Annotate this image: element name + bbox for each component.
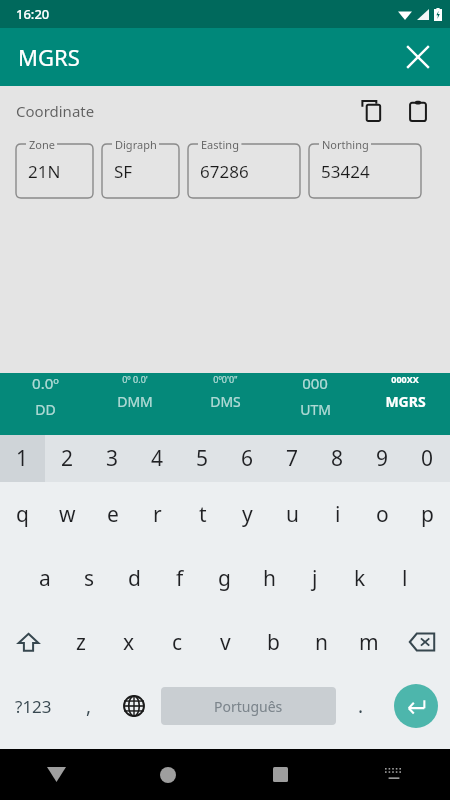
staticText: 0º 0.0' — [122, 373, 148, 385]
button[interactable]: Shift — [0, 610, 57, 674]
button[interactable]: 7 — [270, 435, 315, 482]
button[interactable]: 0.0º — [0, 373, 90, 419]
staticText: 1 — [16, 444, 29, 473]
staticText: l — [402, 564, 408, 593]
button[interactable]: b — [249, 610, 297, 674]
staticText: t — [199, 500, 207, 529]
staticText: f — [176, 564, 184, 593]
button[interactable]: 2 — [45, 435, 90, 482]
button[interactable]: Switch keyboard — [337, 749, 450, 800]
button[interactable]: q — [0, 482, 45, 546]
button[interactable]: k — [337, 546, 382, 610]
button[interactable]: f — [157, 546, 202, 610]
staticText: e — [107, 500, 119, 529]
staticText: 21N — [28, 160, 61, 183]
button[interactable]: j — [292, 546, 337, 610]
button[interactable]: Zone — [16, 136, 93, 198]
staticText: UTM — [300, 400, 331, 419]
button[interactable]: , — [67, 674, 110, 738]
button[interactable]: p — [405, 482, 450, 546]
staticText: n — [315, 628, 328, 657]
button[interactable]: 9 — [360, 435, 405, 482]
button[interactable]: Hide keyboard — [0, 749, 112, 800]
button[interactable]: 5 — [180, 435, 225, 482]
staticText: k — [354, 564, 366, 593]
staticText: i — [335, 500, 341, 529]
staticText: c — [172, 628, 183, 657]
button[interactable]: o — [360, 482, 405, 546]
button[interactable]: n — [297, 610, 345, 674]
staticText: v — [220, 628, 231, 657]
button[interactable]: w — [45, 482, 90, 546]
button[interactable]: v — [201, 610, 249, 674]
button[interactable]: a — [22, 546, 67, 610]
button[interactable]: y — [225, 482, 270, 546]
staticText: ?123 — [15, 695, 52, 718]
staticText: 0º0'0" — [213, 373, 238, 385]
staticText: y — [242, 500, 253, 529]
staticText: 5 — [196, 444, 209, 473]
staticText: 9 — [376, 444, 389, 473]
staticText: , — [86, 693, 92, 719]
button[interactable]: 8 — [315, 435, 360, 482]
staticText: Easting — [201, 137, 239, 152]
button[interactable]: m — [345, 610, 393, 674]
button[interactable]: g — [202, 546, 247, 610]
staticText: Northing — [322, 137, 369, 152]
button[interactable]: e — [90, 482, 135, 546]
staticText: 3 — [106, 444, 119, 473]
staticText: 4 — [151, 444, 164, 473]
button[interactable]: 4 — [135, 435, 180, 482]
button[interactable]: l — [382, 546, 427, 610]
staticText: 0.0º — [32, 373, 59, 393]
button[interactable]: u — [270, 482, 315, 546]
button[interactable]: 0º 0.0' — [90, 373, 180, 411]
staticText: b — [267, 628, 280, 657]
button[interactable]: x — [105, 610, 153, 674]
staticText: DD — [35, 400, 56, 419]
button[interactable]: Digraph — [102, 136, 179, 198]
staticText: p — [421, 500, 434, 529]
button[interactable]: i — [315, 482, 360, 546]
staticText: 16:20 — [16, 5, 50, 23]
staticText: h — [263, 564, 276, 593]
button[interactable]: Enter — [382, 674, 450, 738]
staticText: 0 — [421, 444, 434, 473]
button[interactable]: 6 — [225, 435, 270, 482]
button[interactable]: Change language — [110, 674, 158, 738]
button[interactable]: ?123 — [0, 674, 67, 738]
staticText: 000XX — [391, 373, 419, 385]
button[interactable]: 000XX — [360, 373, 450, 411]
button[interactable]: r — [135, 482, 180, 546]
staticText: g — [218, 564, 231, 593]
button[interactable]: Home — [112, 749, 224, 800]
button[interactable]: . — [339, 674, 382, 738]
button[interactable]: Português — [161, 687, 336, 725]
button[interactable]: Backspace — [393, 610, 450, 674]
button[interactable]: 1 — [0, 435, 45, 482]
button[interactable]: c — [153, 610, 201, 674]
button[interactable]: Recent apps — [224, 749, 337, 800]
button[interactable]: 3 — [90, 435, 135, 482]
staticText: 7 — [286, 444, 299, 473]
staticText: x — [123, 628, 135, 657]
button[interactable]: h — [247, 546, 292, 610]
button[interactable]: Easting — [188, 136, 300, 198]
staticText: Português — [214, 697, 283, 716]
staticText: 53424 — [321, 160, 370, 183]
button[interactable]: 000 — [270, 373, 360, 419]
button[interactable]: s — [67, 546, 112, 610]
button[interactable]: d — [112, 546, 157, 610]
staticText: m — [359, 628, 379, 657]
staticText: s — [84, 564, 95, 593]
button[interactable]: Northing — [309, 136, 421, 198]
button[interactable]: 0 — [405, 435, 450, 482]
button[interactable]: t — [180, 482, 225, 546]
staticText: SF — [114, 160, 133, 183]
staticText: MGRS — [385, 392, 426, 411]
button[interactable]: Close — [394, 33, 442, 81]
button[interactable]: Paste — [400, 93, 436, 129]
button[interactable]: z — [57, 610, 105, 674]
button[interactable]: 0º0'0" — [180, 373, 270, 411]
button[interactable]: Copy — [354, 93, 390, 129]
